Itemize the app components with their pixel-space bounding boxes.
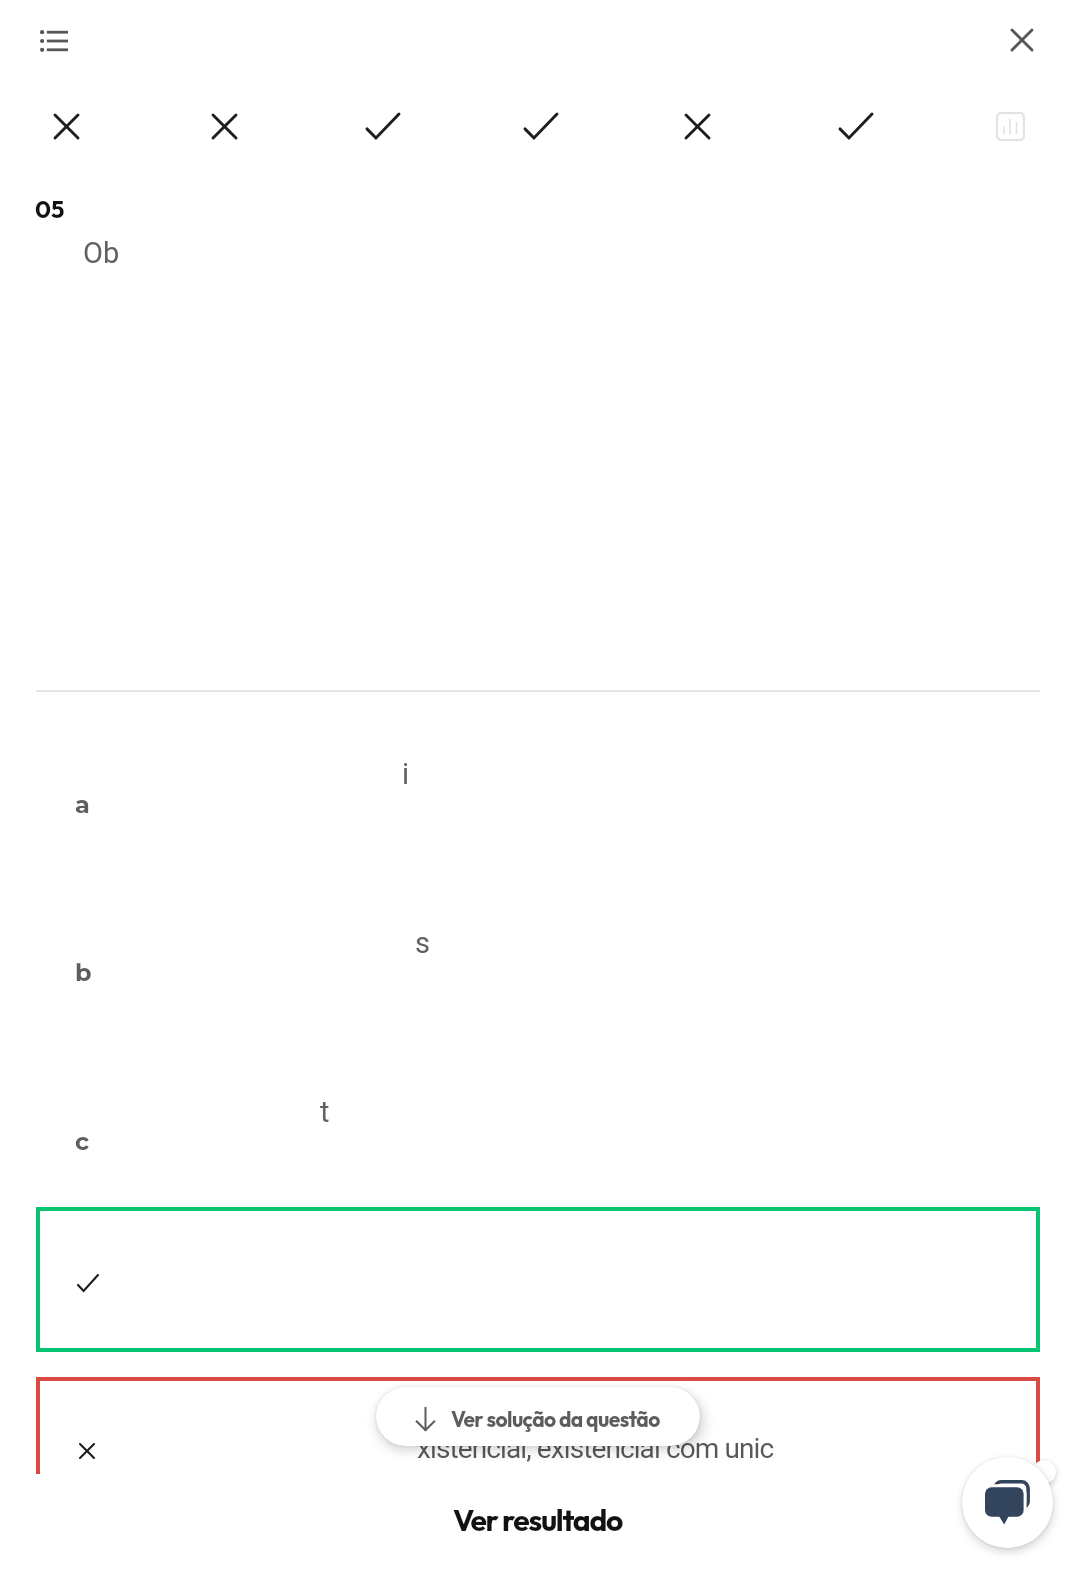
button[interactable]: Questão 1 incorreta	[38, 98, 94, 154]
staticText: b	[75, 958, 92, 987]
button[interactable]: Questão 3 correta	[353, 98, 409, 154]
button[interactable]: Abrir chat de suporte	[962, 1457, 1053, 1548]
staticText: c	[75, 1127, 90, 1156]
button[interactable]: Ver resultado	[430, 1492, 646, 1548]
button[interactable]: Alternativa c	[36, 1101, 1040, 1165]
button[interactable]: Ver solução da questão	[376, 1387, 700, 1446]
staticText: 05	[35, 194, 65, 224]
button[interactable]: Questão 5 incorreta	[669, 98, 725, 154]
staticText: Ob	[83, 236, 120, 270]
staticText: a	[75, 790, 90, 819]
button[interactable]: Fechar	[998, 16, 1046, 64]
button[interactable]: Questão 4 correta	[511, 98, 567, 154]
button[interactable]: Alternativa b	[36, 932, 1040, 996]
button[interactable]: Estatísticas	[982, 98, 1038, 154]
staticText: xistencial, existencial com unic	[417, 1432, 774, 1465]
button[interactable]: Questão 2 incorreta	[196, 98, 252, 154]
staticText: t	[320, 1095, 330, 1129]
button[interactable]: Alternativa incorreta	[36, 1377, 1040, 1570]
staticText: i	[402, 757, 410, 791]
button[interactable]: Questão 6 correta	[826, 98, 882, 154]
staticText: Ver solução da questão	[451, 1406, 660, 1432]
staticText: s	[415, 926, 430, 960]
button[interactable]: Alternativa a	[36, 764, 1040, 828]
staticText: Ver resultado	[453, 1501, 623, 1539]
button[interactable]: Alternativa correta	[36, 1207, 1040, 1352]
button[interactable]: Lista de questões	[16, 16, 68, 68]
